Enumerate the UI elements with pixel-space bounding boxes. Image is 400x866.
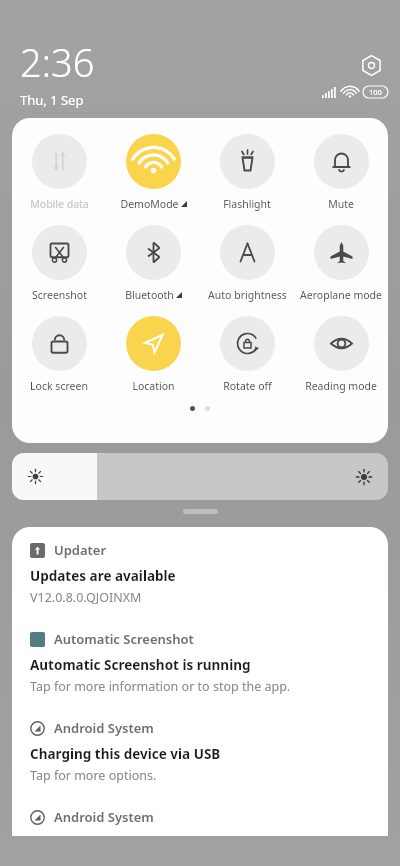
staticText: Tap for more options. (30, 767, 157, 784)
staticText: Bluetooth (125, 288, 174, 302)
staticText: DemoMode (120, 197, 179, 211)
staticText: Updates are available (30, 567, 176, 585)
staticText: Tap for more information or to stop the … (30, 678, 291, 695)
staticText: Rotate off (223, 379, 272, 393)
staticText: Location (132, 379, 175, 393)
staticText: Automatic Screenshot (54, 630, 194, 648)
staticText: Thu, 1 Sep (20, 91, 84, 109)
staticText: V12.0.8.0.QJOINXM (30, 589, 142, 606)
button[interactable]: Rotate off (200, 314, 294, 395)
staticText: Charging this device via USB (30, 745, 221, 763)
button[interactable]: Aeroplane mode (294, 223, 388, 304)
button[interactable]: Bluetooth (106, 223, 200, 304)
button[interactable]: Settings (356, 50, 386, 80)
button[interactable]: Screenshot (12, 223, 106, 304)
button[interactable]: DemoMode (106, 132, 200, 213)
staticText: Android System (54, 808, 154, 826)
button[interactable]: Mobile data (12, 132, 106, 213)
button[interactable]: Mute (294, 132, 388, 213)
button[interactable]: Reading mode (294, 314, 388, 395)
staticText: Reading mode (305, 379, 377, 393)
staticText: Mobile data (30, 197, 89, 211)
staticText: Mute (328, 197, 354, 211)
staticText: Android System (54, 719, 154, 737)
staticText: Lock screen (30, 379, 88, 393)
button[interactable]: Location (106, 314, 200, 395)
staticText: Auto brightness (208, 288, 287, 302)
staticText: Updater (54, 541, 107, 559)
button[interactable]: Brightness (12, 453, 388, 500)
button[interactable]: Android System (12, 705, 388, 794)
button[interactable]: Updater (12, 527, 388, 616)
button[interactable]: Android System (12, 794, 388, 836)
staticText: Automatic Screenshot is running (30, 656, 251, 674)
button[interactable]: Automatic Screenshot (12, 616, 388, 705)
staticText: 2:36 (20, 36, 95, 88)
staticText: Flashlight (223, 197, 271, 211)
button[interactable]: Flashlight (200, 132, 294, 213)
button[interactable]: Lock screen (12, 314, 106, 395)
staticText: Screenshot (32, 288, 87, 302)
staticText: Aeroplane mode (300, 288, 382, 302)
staticText: 100 (369, 87, 382, 97)
button[interactable]: Auto brightness (200, 223, 294, 304)
